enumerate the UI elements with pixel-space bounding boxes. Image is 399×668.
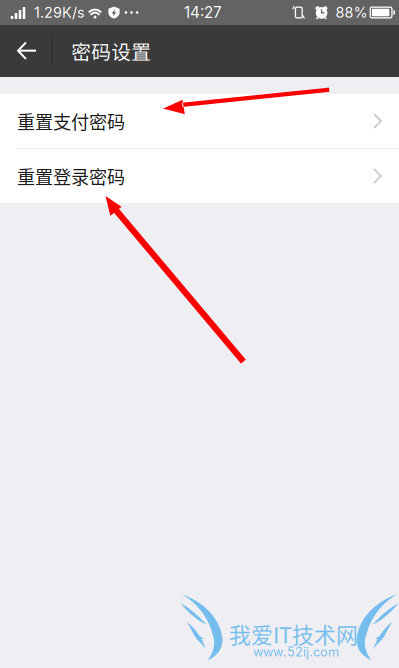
staticText: 重置登录密码 [17, 163, 125, 189]
staticText: 密码设置 [71, 37, 151, 65]
staticText: 重置支付密码 [17, 108, 125, 134]
staticText: 88% [336, 4, 368, 21]
button[interactable]: 重置登录密码 [0, 149, 399, 203]
button[interactable]: Back [9, 25, 45, 77]
staticText: 14:27 [184, 3, 222, 22]
button[interactable]: 重置支付密码 [0, 94, 399, 148]
staticText: 1.29K/s [34, 4, 85, 21]
staticText: 我爱IT技术网 [229, 618, 358, 650]
staticText: www.52ij.com [253, 644, 339, 659]
